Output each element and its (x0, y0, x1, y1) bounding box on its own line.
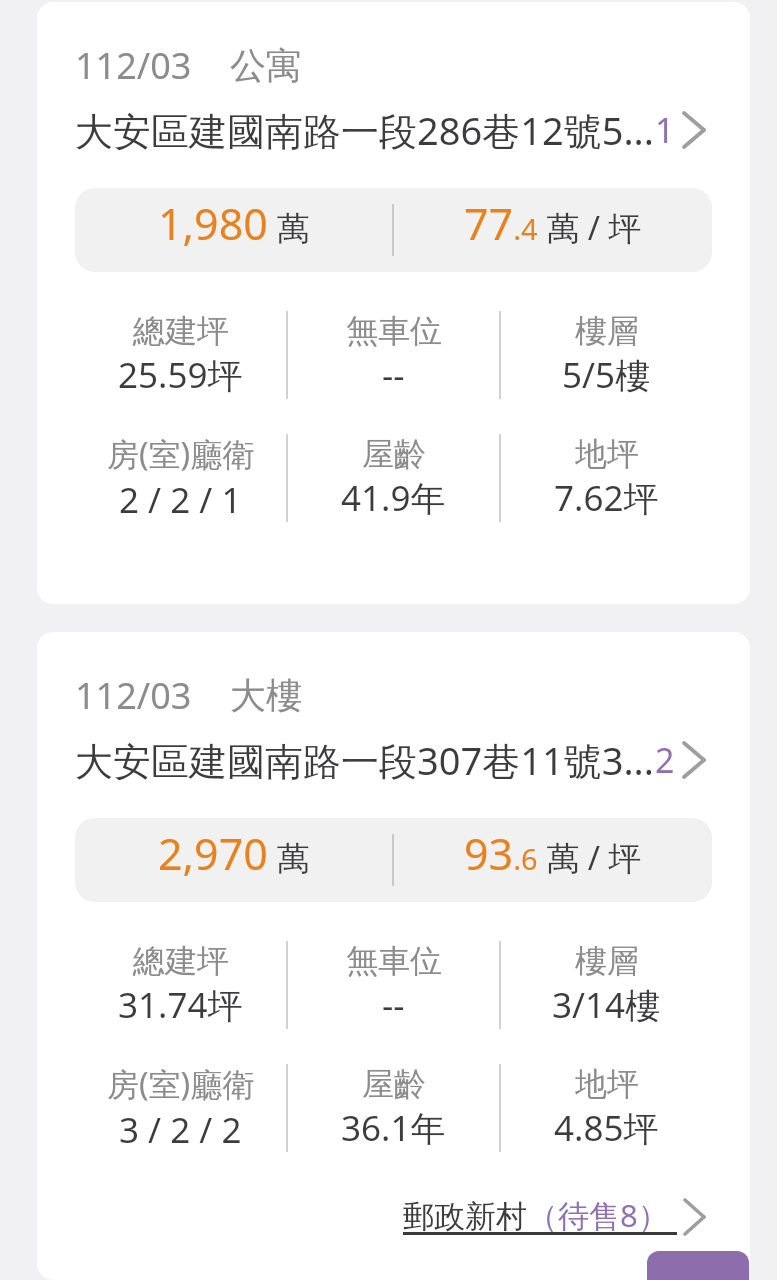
staticText: 屋齡 (362, 1064, 426, 1104)
staticText: 112/03 (75, 671, 192, 720)
staticText: 屋齡 (362, 434, 426, 474)
button[interactable] (647, 1251, 749, 1280)
staticText: 地坪 (575, 434, 639, 474)
staticText: 無車位 (346, 311, 442, 351)
staticText: 41.9年 (341, 474, 446, 522)
button[interactable]: 大安區建國南路一段307巷11號3... (75, 734, 712, 786)
staticText: 7.62坪 (554, 474, 659, 522)
staticText: -- (382, 981, 405, 1029)
staticText: 大安區建國南路一段286巷12號5... (75, 104, 655, 156)
staticText: 公寓 (230, 43, 302, 88)
staticText: 總建坪 (133, 941, 229, 981)
staticText: 房(室)廳衛 (107, 1062, 255, 1106)
staticText: -- (382, 351, 405, 399)
staticText: 2,970 萬 (158, 824, 310, 883)
staticText: 2 / 2 / 1 (119, 476, 242, 524)
staticText: 樓層 (575, 311, 639, 351)
staticText: 樓層 (575, 941, 639, 981)
staticText: 地坪 (575, 1064, 639, 1104)
button[interactable]: 大安區建國南路一段286巷12號5... (75, 104, 712, 156)
staticText: 31.74坪 (118, 981, 243, 1029)
staticText: 5/5樓 (562, 351, 651, 399)
staticText: 大安區建國南路一段307巷11號3... (75, 734, 655, 786)
staticText: 1 (655, 107, 675, 153)
staticText: 無車位 (346, 941, 442, 981)
staticText: 77.4 萬 / 坪 (464, 194, 642, 253)
staticText: 2 (655, 737, 675, 783)
staticText: 36.1年 (341, 1104, 446, 1152)
staticText: 3 / 2 / 2 (119, 1106, 242, 1154)
staticText: 112/03 (75, 41, 192, 90)
staticText: 4.85坪 (554, 1104, 659, 1152)
staticText: 房(室)廳衛 (107, 432, 255, 476)
staticText: 93.6 萬 / 坪 (464, 824, 642, 883)
button[interactable]: 郵政新村（待售8） (403, 1194, 677, 1239)
staticText: 郵政新村（待售8） (403, 1194, 669, 1236)
staticText: 總建坪 (133, 311, 229, 351)
staticText: 1,980 萬 (158, 194, 310, 253)
staticText: 3/14樓 (552, 981, 661, 1029)
staticText: 25.59坪 (118, 351, 243, 399)
staticText: 大樓 (230, 673, 302, 718)
